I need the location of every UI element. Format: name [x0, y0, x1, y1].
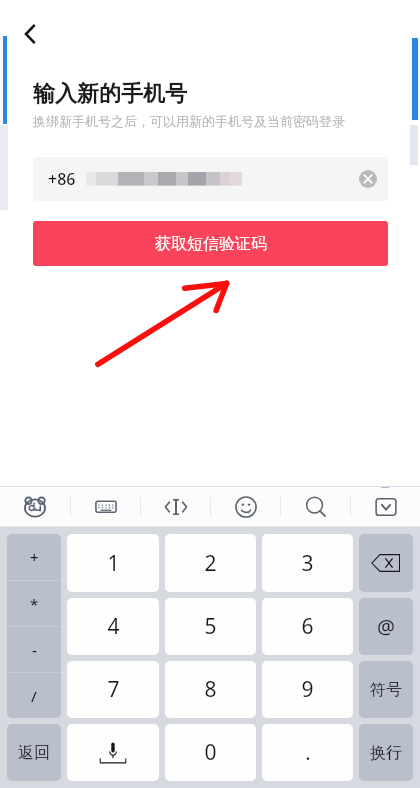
staticText: 0	[204, 738, 217, 767]
staticText: 7	[107, 675, 120, 704]
staticText: 符号	[370, 680, 402, 700]
staticText: 3	[301, 549, 314, 578]
button[interactable]: -	[7, 627, 61, 672]
button[interactable]: 6	[262, 598, 353, 655]
staticText: +86	[48, 168, 76, 190]
button[interactable]: Backspace	[359, 534, 413, 592]
button[interactable]: Emoji	[211, 488, 280, 526]
button[interactable]: 3	[262, 534, 353, 592]
staticText: @	[377, 613, 395, 640]
staticText: 4	[107, 612, 120, 641]
button[interactable]: 9	[262, 661, 353, 718]
button[interactable]: +	[7, 534, 61, 580]
button[interactable]: 8	[165, 661, 256, 718]
button[interactable]: 1	[67, 534, 159, 592]
button[interactable]: 获取短信验证码	[33, 221, 388, 266]
staticText: 9	[301, 675, 314, 704]
button[interactable]: @	[359, 598, 413, 655]
button[interactable]: 4	[67, 598, 159, 655]
staticText: 5	[204, 612, 217, 641]
button[interactable]: Move cursor	[141, 488, 210, 526]
staticText: +	[30, 547, 39, 567]
staticText: 2	[204, 549, 217, 578]
button[interactable]: 返回	[7, 724, 61, 781]
button[interactable]: Keyboard	[71, 488, 140, 526]
staticText: 换绑新手机号之后，可以用新的手机号及当前密码登录	[33, 113, 345, 129]
button[interactable]: Voice input	[67, 724, 159, 781]
staticText: *	[30, 594, 39, 614]
staticText: 6	[301, 612, 314, 641]
button[interactable]: Input method	[0, 488, 70, 526]
button[interactable]: /	[7, 673, 61, 718]
staticText: 返回	[18, 743, 50, 763]
button[interactable]: +86	[33, 157, 388, 201]
button[interactable]: Clear	[348, 159, 388, 199]
button[interactable]: 2	[165, 534, 256, 592]
button[interactable]: 0	[165, 724, 256, 781]
button[interactable]: 5	[165, 598, 256, 655]
staticText: 8	[204, 675, 217, 704]
button[interactable]: Hide keyboard	[351, 488, 420, 526]
button[interactable]: *	[7, 581, 61, 626]
button[interactable]: 7	[67, 661, 159, 718]
button[interactable]: .	[262, 724, 353, 781]
staticText: /	[31, 686, 37, 706]
staticText: .	[305, 739, 311, 766]
staticText: 输入新的手机号	[33, 80, 187, 108]
button[interactable]: 符号	[359, 661, 413, 718]
button[interactable]: Search	[281, 488, 350, 526]
staticText: 获取短信验证码	[155, 234, 267, 254]
button[interactable]: 换行	[359, 724, 413, 781]
staticText: 换行	[370, 743, 402, 763]
staticText: -	[32, 640, 37, 660]
button[interactable]: Back	[6, 10, 54, 58]
staticText: 1	[107, 549, 120, 578]
